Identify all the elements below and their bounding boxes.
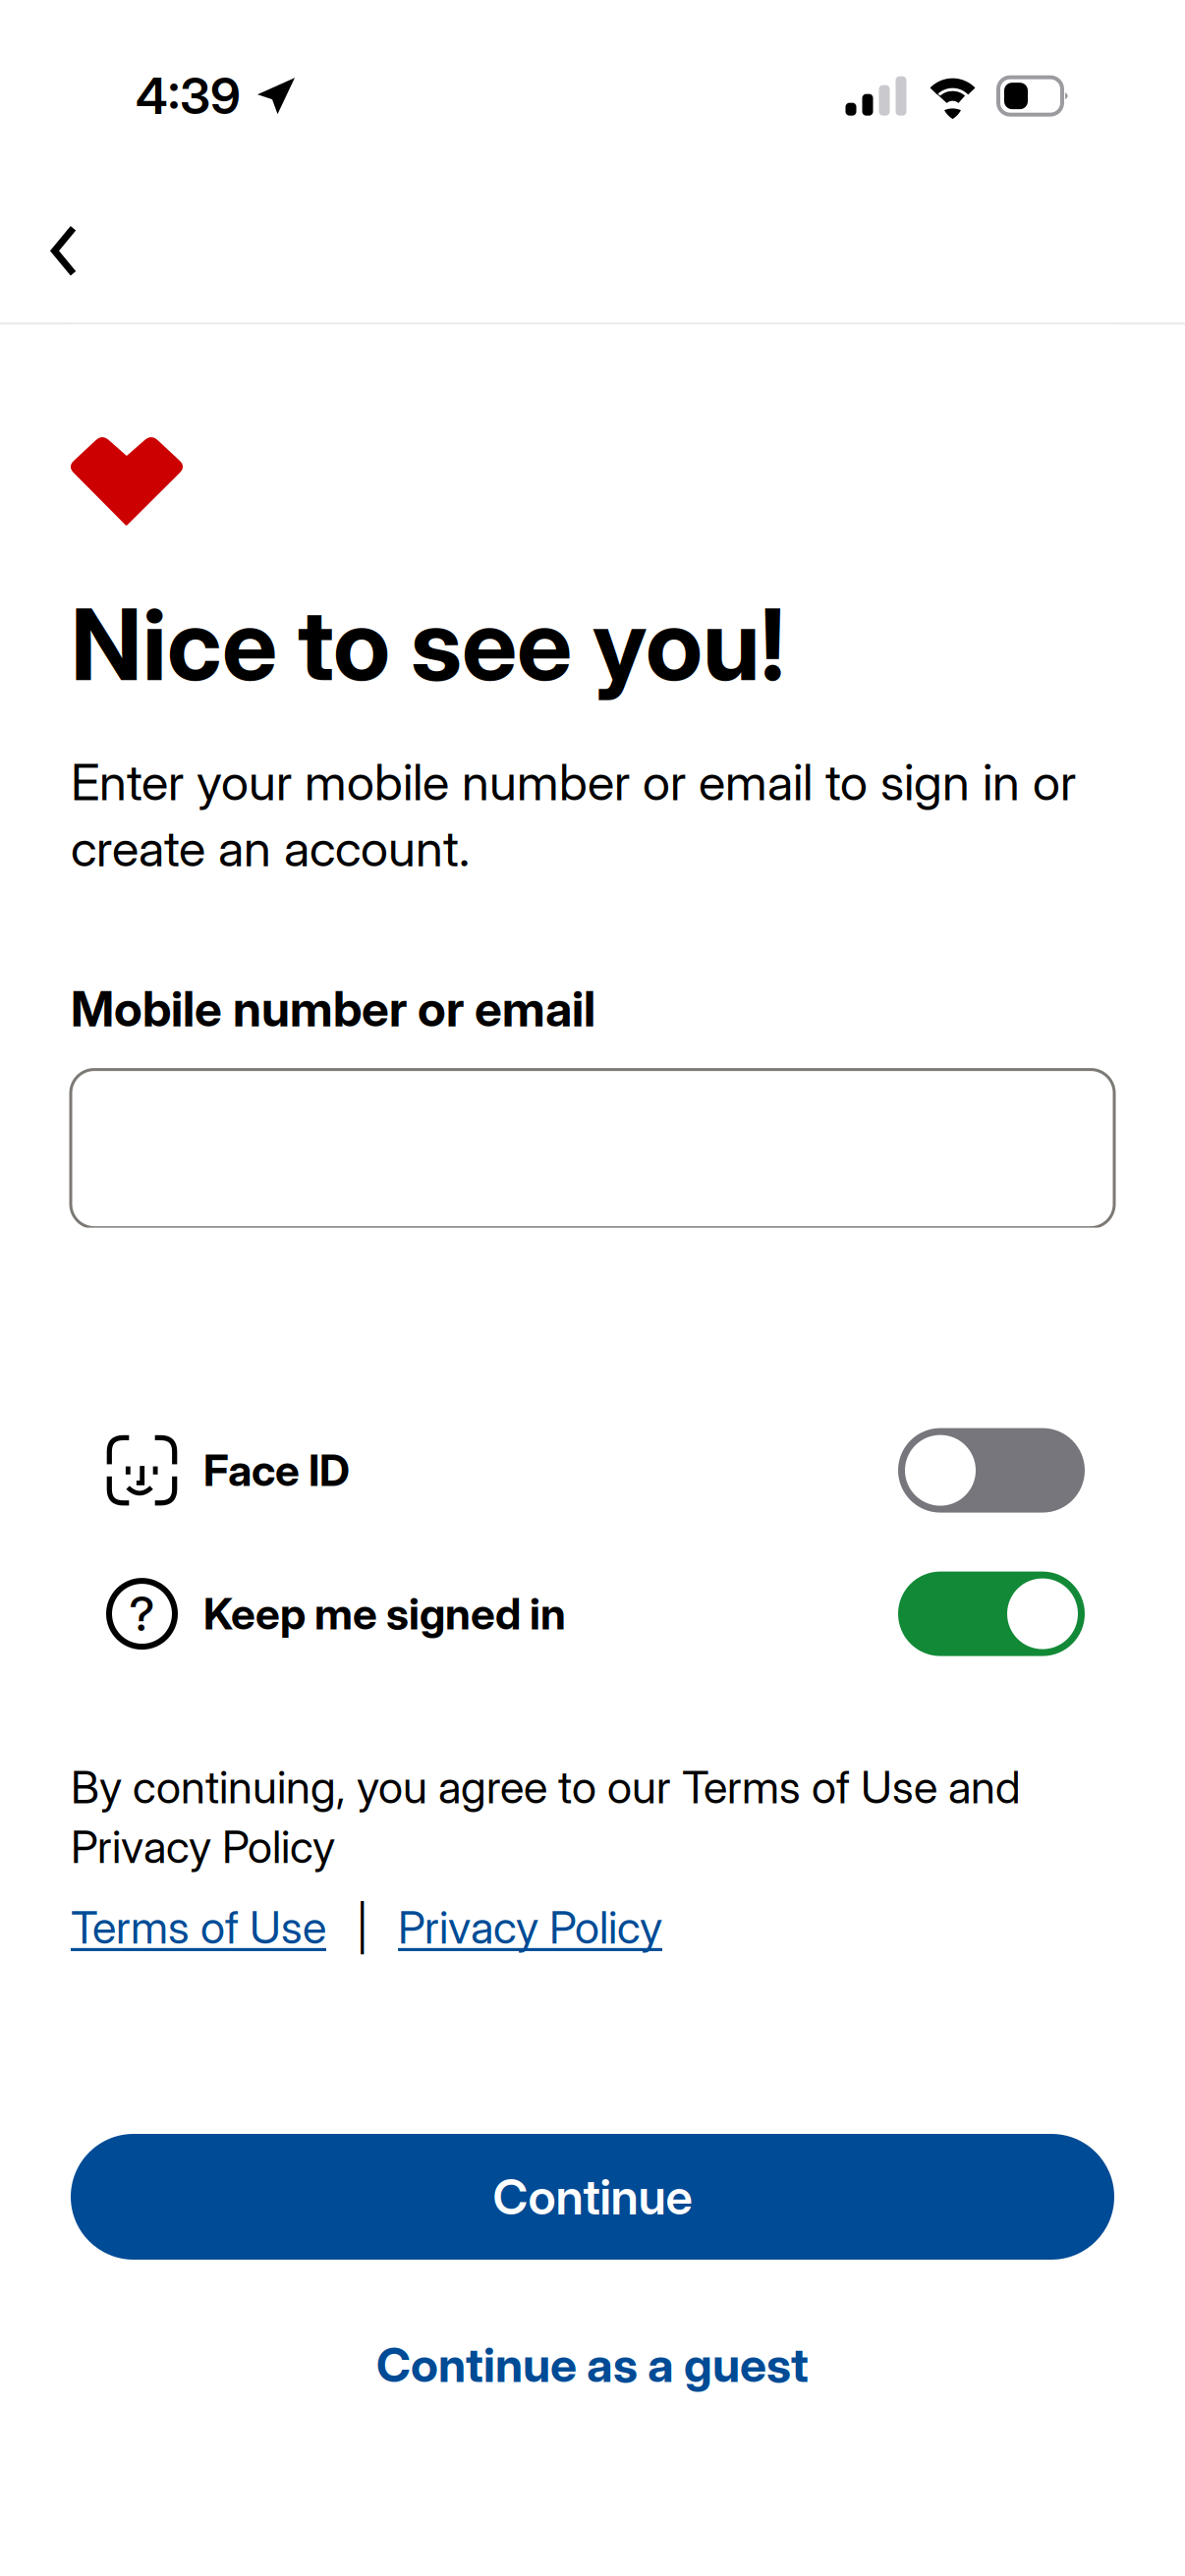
button[interactable]: Continue as a guest: [71, 2334, 1114, 2395]
staticText: ?: [129, 1585, 155, 1642]
button[interactable]: ?: [71, 1570, 1114, 1658]
staticText: Face ID: [203, 1444, 350, 1496]
staticText: Privacy Policy: [398, 1900, 662, 1954]
staticText: Continue as a guest: [376, 2336, 809, 2393]
staticText: 4:39: [136, 66, 241, 126]
staticText: Enter your mobile number or email to sig…: [71, 752, 1076, 878]
staticText: Mobile number or email: [71, 979, 595, 1038]
staticText: Continue: [493, 2167, 692, 2226]
staticText: Nice to see you!: [71, 585, 785, 704]
button[interactable]: Privacy Policy: [398, 1900, 662, 1954]
button[interactable]: Face ID: [71, 1426, 1114, 1515]
staticText: Keep me signed in: [203, 1588, 566, 1640]
button[interactable]: Back: [17, 204, 111, 298]
button[interactable]: Continue: [71, 2134, 1114, 2260]
staticText: By continuing, you agree to our Terms of…: [71, 1760, 1021, 1874]
button[interactable]: Terms of Use: [71, 1900, 326, 1954]
staticText: |: [356, 1900, 368, 1954]
staticText: Terms of Use: [71, 1900, 326, 1954]
